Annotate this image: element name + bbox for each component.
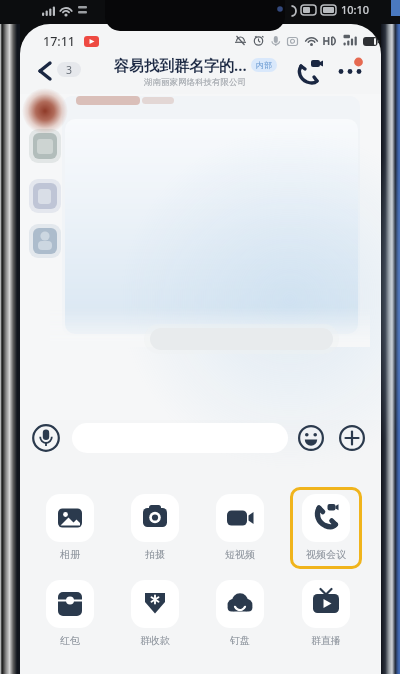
staticText: 红包 bbox=[60, 634, 80, 647]
button[interactable]: 3 bbox=[32, 56, 84, 82]
button[interactable] bbox=[302, 494, 350, 542]
staticText: 10:10 bbox=[341, 2, 370, 17]
button[interactable] bbox=[333, 56, 365, 80]
staticText: 17:11 bbox=[43, 33, 76, 50]
staticText: 拍摄 bbox=[145, 548, 165, 561]
button[interactable] bbox=[339, 425, 365, 451]
staticText: 群收款 bbox=[140, 634, 170, 647]
staticText: 容易找到群名字的... bbox=[114, 55, 247, 75]
button[interactable] bbox=[216, 580, 264, 628]
staticText: 相册 bbox=[60, 548, 80, 561]
staticText: 钉盘 bbox=[230, 634, 250, 647]
button[interactable] bbox=[131, 494, 179, 542]
button[interactable] bbox=[46, 580, 94, 628]
staticText: 视频会议 bbox=[306, 548, 346, 561]
button[interactable] bbox=[216, 494, 264, 542]
button[interactable] bbox=[46, 494, 94, 542]
staticText: 群直播 bbox=[311, 634, 341, 647]
button[interactable] bbox=[32, 424, 60, 452]
staticText: 短视频 bbox=[225, 548, 255, 561]
button[interactable] bbox=[298, 425, 324, 451]
button[interactable] bbox=[131, 580, 179, 628]
staticText: 3 bbox=[66, 63, 73, 77]
button[interactable] bbox=[302, 580, 350, 628]
staticText: 湖南丽家网络科技有限公司 bbox=[144, 77, 246, 88]
staticText: 内部 bbox=[256, 60, 272, 70]
button[interactable] bbox=[294, 58, 324, 88]
